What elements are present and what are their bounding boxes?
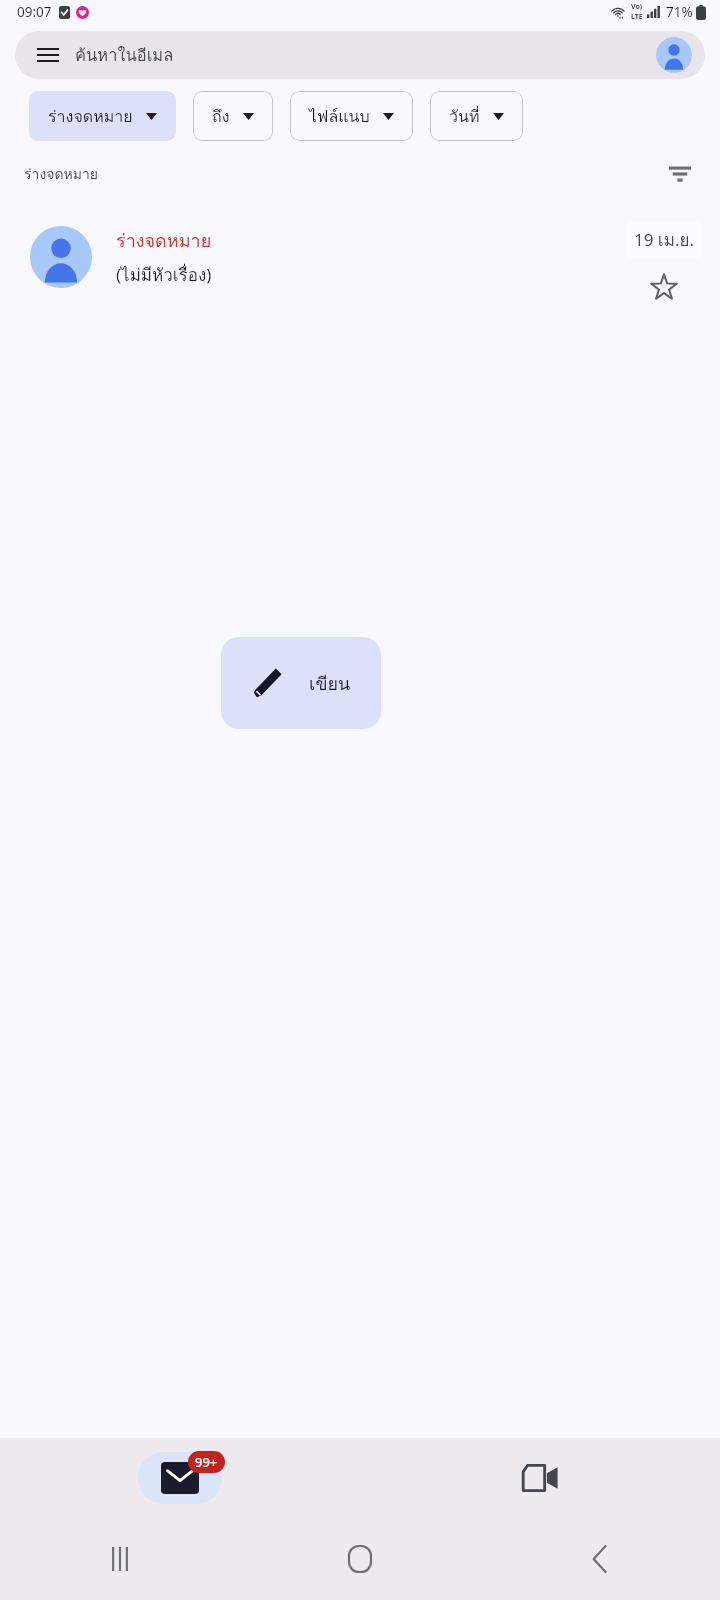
staticText: ถึง	[212, 104, 230, 129]
button[interactable]: Open navigation menu	[31, 38, 65, 72]
button[interactable]: วันที่	[430, 91, 523, 141]
button[interactable]: Back	[570, 1529, 630, 1589]
staticText: ร่างจดหมาย	[116, 226, 212, 255]
staticText: เขียน	[309, 669, 351, 698]
staticText: ค้นหาในอีเมล	[75, 42, 174, 68]
staticText: ไฟล์แนบ	[309, 104, 370, 129]
button[interactable]: Meet	[480, 1446, 600, 1510]
button[interactable]: Recent apps	[90, 1529, 150, 1589]
button[interactable]: เขียน	[221, 637, 381, 729]
staticText: 19 เม.ย.	[634, 226, 694, 253]
button[interactable]: Home	[330, 1529, 390, 1589]
staticText: ร่างจดหมาย	[48, 104, 133, 129]
button[interactable]: ไฟล์แนบ	[290, 91, 413, 141]
staticText: Vo)	[631, 2, 643, 12]
staticText: LTE	[631, 12, 643, 22]
button[interactable]: ถึง	[193, 91, 273, 141]
button[interactable]: ร่างจดหมาย	[0, 204, 720, 312]
staticText: วันที่	[449, 104, 480, 129]
staticText: 09:07	[17, 3, 52, 21]
button[interactable]: Sort and filter	[662, 156, 698, 192]
button[interactable]: Mail, 99+ unread	[120, 1446, 240, 1510]
staticText: (ไม่มีหัวเรื่อง)	[116, 261, 212, 288]
button[interactable]: Open navigation menu	[15, 31, 705, 79]
button[interactable]: Account	[656, 37, 692, 73]
button[interactable]: ร่างจดหมาย	[29, 91, 176, 141]
button[interactable]: Star	[645, 268, 683, 306]
staticText: ร่างจดหมาย	[24, 163, 99, 185]
staticText: 71%	[666, 3, 693, 21]
staticText: 99+	[195, 1453, 218, 1471]
